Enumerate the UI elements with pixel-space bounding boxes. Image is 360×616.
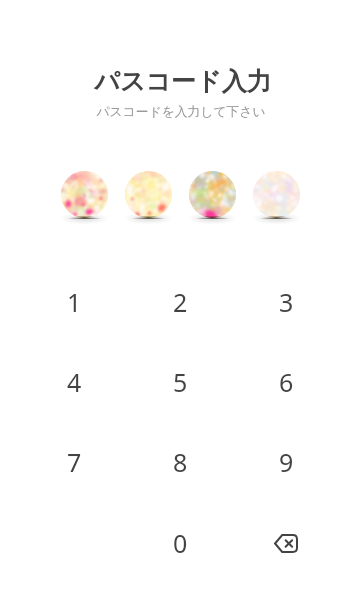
staticText: 3 <box>279 285 294 319</box>
staticText: 7 <box>67 445 82 479</box>
staticText: 9 <box>279 445 294 479</box>
button[interactable]: 6 <box>233 342 339 422</box>
button[interactable]: Backspace <box>233 503 339 583</box>
button[interactable]: 3 <box>233 262 339 342</box>
button[interactable]: 0 <box>127 503 233 583</box>
staticText: 6 <box>279 365 294 399</box>
staticText: 4 <box>67 365 82 399</box>
button[interactable]: 2 <box>127 262 233 342</box>
button[interactable]: 9 <box>233 422 339 502</box>
staticText: パスコード入力 <box>94 66 272 97</box>
staticText: 2 <box>173 285 188 319</box>
button[interactable]: 4 <box>21 342 127 422</box>
staticText: 0 <box>173 526 188 560</box>
button[interactable]: 7 <box>21 422 127 502</box>
staticText: パスコードを入力して下さい <box>96 104 266 120</box>
button[interactable]: 5 <box>127 342 233 422</box>
button[interactable]: 1 <box>21 262 127 342</box>
staticText: 8 <box>173 445 188 479</box>
button[interactable]: 8 <box>127 422 233 502</box>
staticText: 5 <box>173 365 188 399</box>
staticText: 1 <box>67 285 82 319</box>
